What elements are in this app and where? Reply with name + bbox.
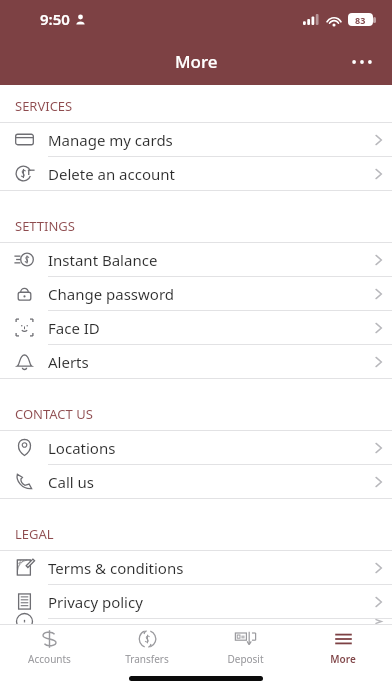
- button[interactable]: Accounts: [0, 625, 98, 669]
- staticText: SETTINGS: [15, 217, 75, 235]
- button[interactable]: Face ID: [0, 311, 392, 344]
- button[interactable]: Deposit: [196, 625, 294, 669]
- staticText: Delete an account: [48, 164, 364, 184]
- staticText: 9:50: [40, 9, 70, 29]
- staticText: CONTACT US: [15, 405, 93, 423]
- button[interactable]: Manage my cards: [0, 123, 392, 156]
- staticText: Privacy policy: [48, 592, 364, 612]
- staticText: Manage my cards: [48, 130, 364, 150]
- staticText: Transfers: [125, 652, 169, 666]
- button[interactable]: Terms & conditions: [0, 551, 392, 584]
- button[interactable]: More options: [340, 40, 384, 84]
- button[interactable]: Delete an account: [0, 157, 392, 190]
- button[interactable]: Locations: [0, 431, 392, 464]
- staticText: Alerts: [48, 352, 364, 372]
- staticText: SERVICES: [15, 97, 73, 115]
- staticText: Deposit: [227, 652, 264, 666]
- staticText: Locations: [48, 438, 364, 458]
- staticText: Change password: [48, 284, 364, 304]
- staticText: More: [330, 652, 356, 666]
- staticText: Face ID: [48, 318, 364, 338]
- staticText: LEGAL: [15, 525, 54, 543]
- button[interactable]: Change password: [0, 277, 392, 310]
- button[interactable]: Acknowledgements: [0, 619, 392, 624]
- staticText: Accounts: [28, 652, 71, 666]
- staticText: More: [175, 50, 218, 73]
- button[interactable]: Alerts: [0, 345, 392, 378]
- button[interactable]: Transfers: [98, 625, 196, 669]
- button[interactable]: More: [294, 625, 392, 669]
- staticText: Call us: [48, 472, 364, 492]
- staticText: 83: [355, 14, 366, 26]
- button[interactable]: Privacy policy: [0, 585, 392, 618]
- button[interactable]: Instant Balance: [0, 243, 392, 276]
- staticText: Instant Balance: [48, 250, 364, 270]
- button[interactable]: Call us: [0, 465, 392, 498]
- staticText: Terms & conditions: [48, 558, 364, 578]
